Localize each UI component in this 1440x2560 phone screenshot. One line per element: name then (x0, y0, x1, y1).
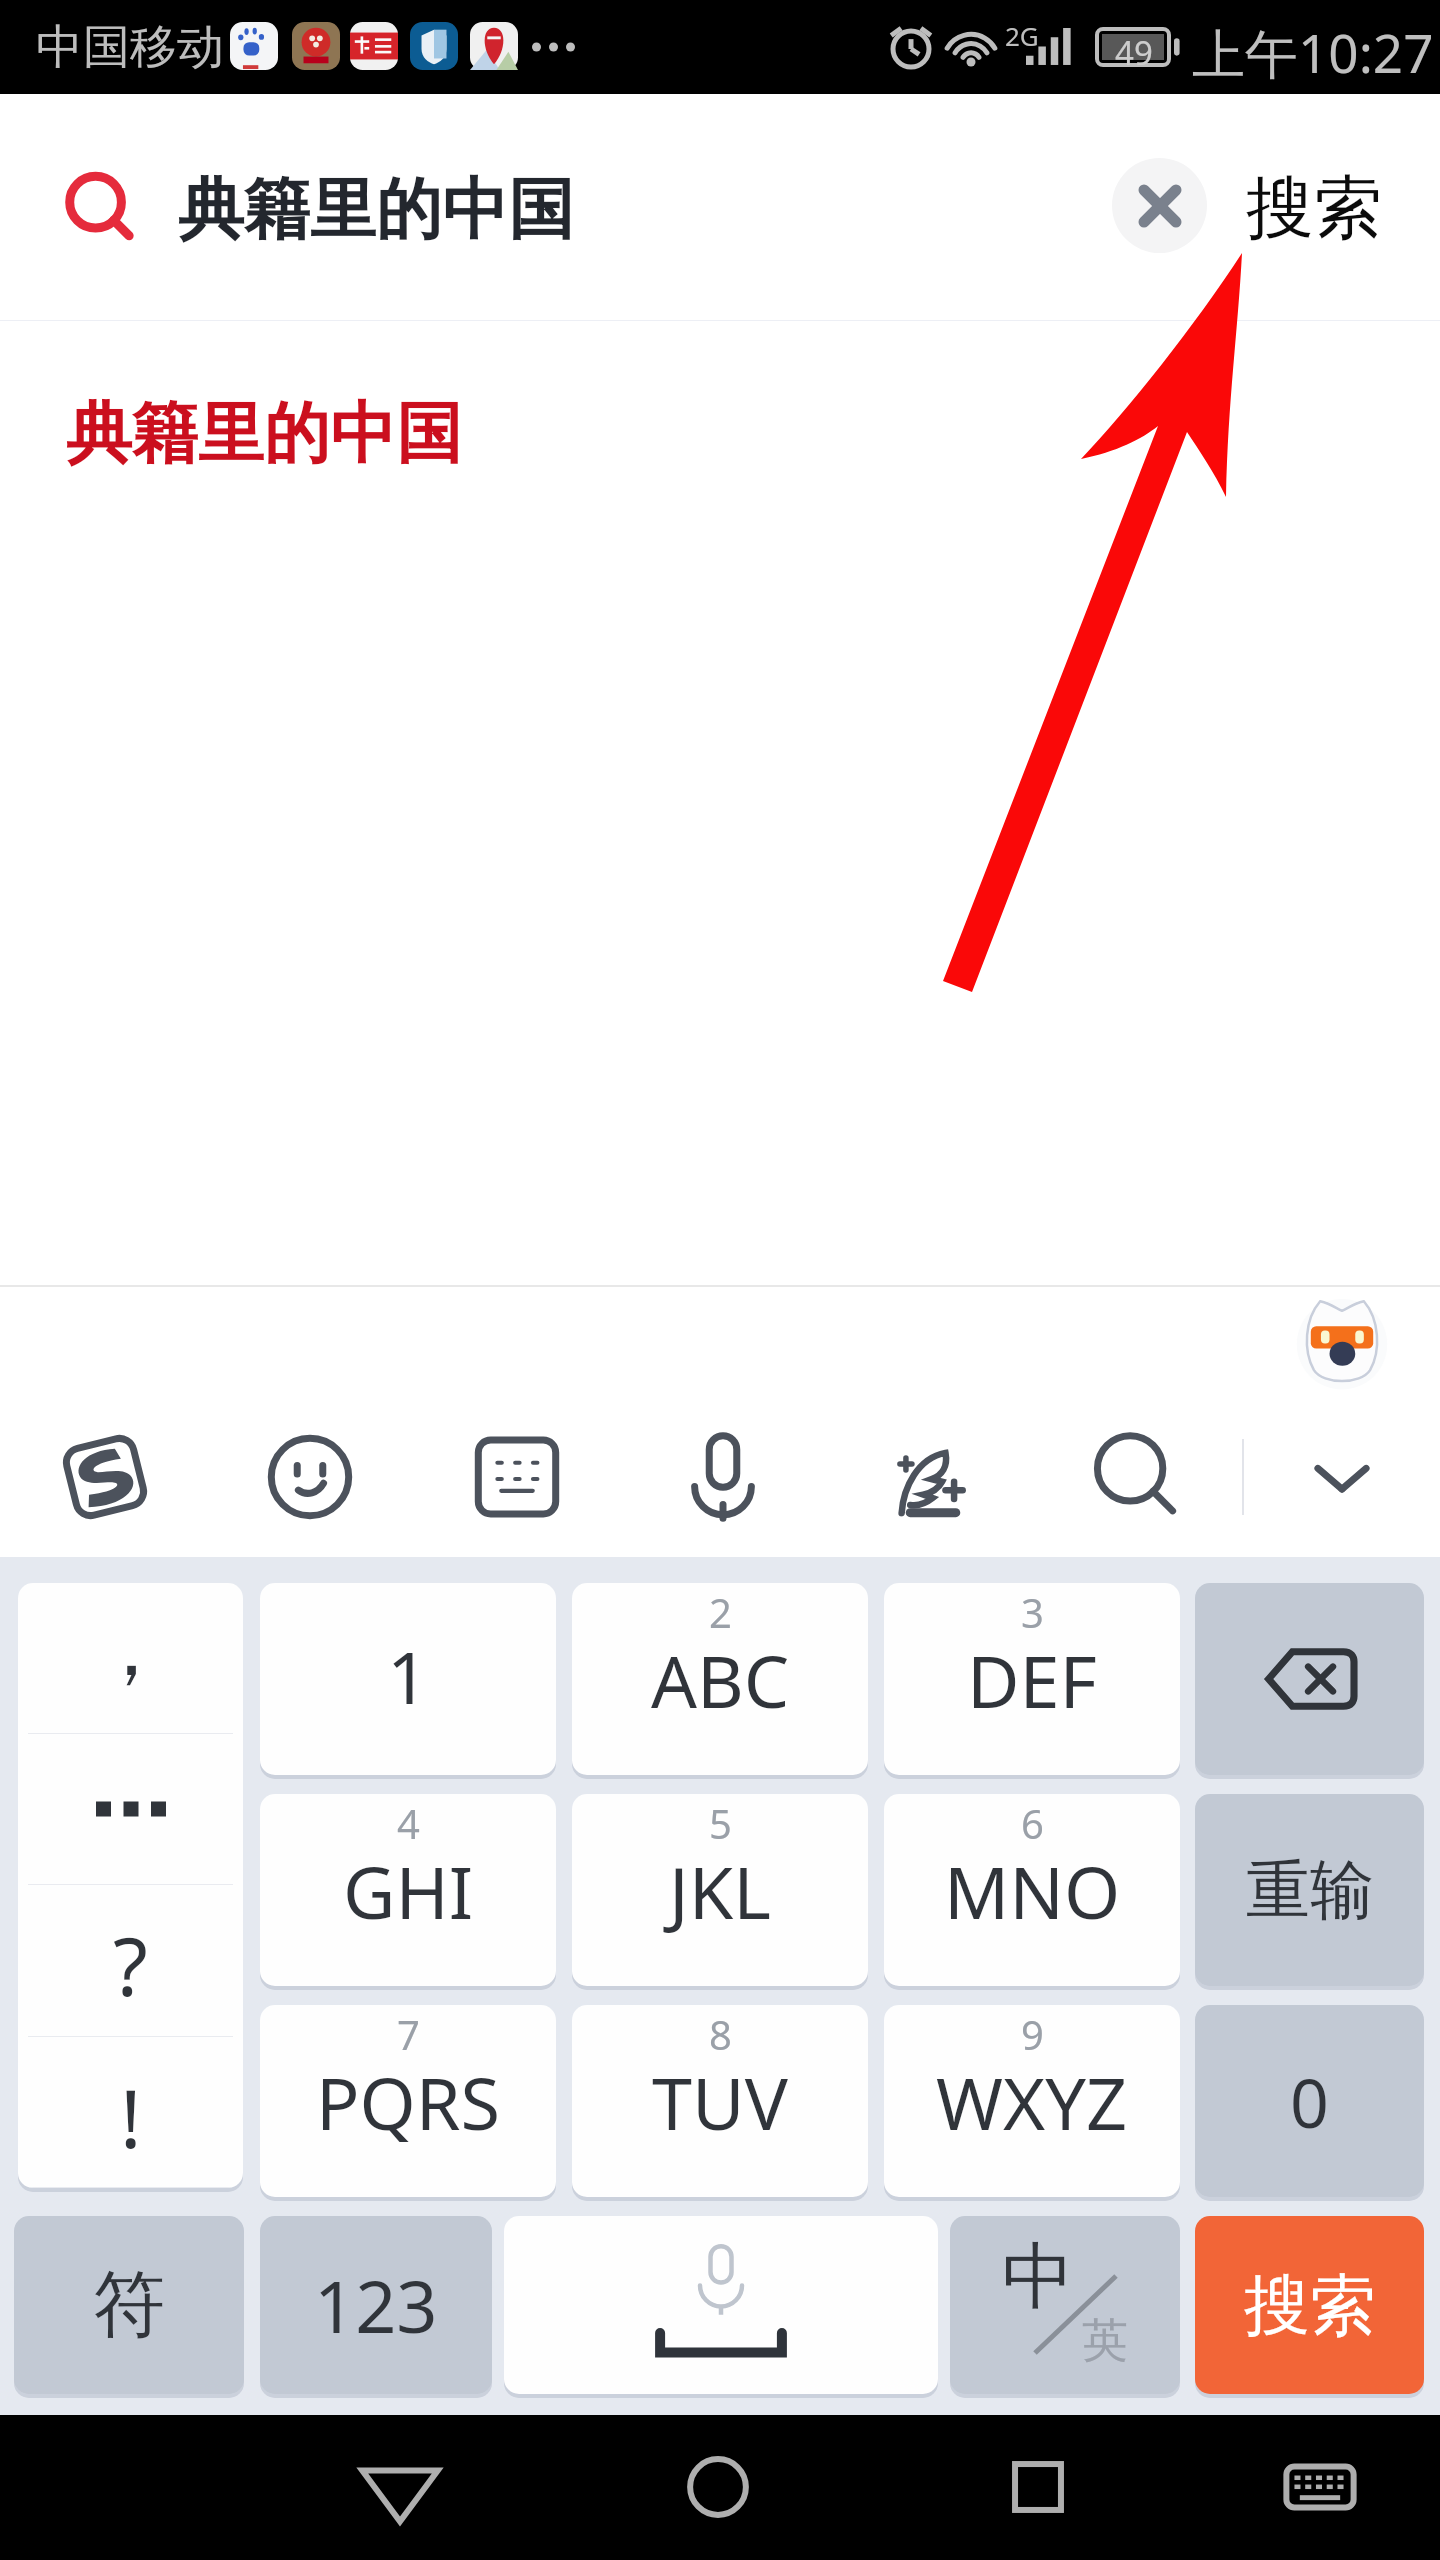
staticText: 重输 (1246, 1850, 1374, 1931)
button[interactable]: Hide keyboard (1250, 2417, 1390, 2557)
button[interactable]: Home (648, 2417, 788, 2557)
staticText: TUV (652, 2053, 788, 2151)
button[interactable]: 5 (572, 1794, 868, 1986)
staticText: 英 (1082, 2312, 1128, 2370)
button[interactable]: 4 (260, 1794, 556, 1986)
staticText: 2 (709, 1585, 732, 1639)
button[interactable]: Space (504, 2216, 938, 2394)
button[interactable]: 搜索 (1195, 2216, 1424, 2394)
button[interactable]: 2 (572, 1583, 868, 1775)
staticText: ， (91, 1598, 171, 1699)
button[interactable]: Assistant (1303, 1297, 1381, 1383)
staticText: DEF (967, 1631, 1097, 1729)
staticText: 7 (397, 2007, 420, 2061)
button[interactable]: Search (1079, 1419, 1195, 1535)
button[interactable]: 重输 (1195, 1794, 1424, 1986)
button[interactable]: 6 (884, 1794, 1180, 1986)
staticText: 上午10:27 (1192, 16, 1434, 88)
button[interactable]: Voice input (665, 1419, 781, 1535)
button[interactable]: Recents (968, 2417, 1108, 2557)
staticText: 5 (709, 1796, 732, 1850)
staticText: 3 (1021, 1585, 1044, 1639)
staticText: 1 (387, 1627, 429, 1725)
button[interactable]: Clear (1112, 158, 1207, 253)
staticText: WXYZ (936, 2053, 1128, 2151)
staticText: MNO (944, 1842, 1121, 1940)
staticText: 123 (314, 2256, 438, 2354)
staticText: ABC (651, 1631, 790, 1729)
staticText: 2G (1005, 18, 1039, 53)
button[interactable]: 123 (260, 2216, 492, 2394)
button[interactable]: Handwriting (872, 1419, 988, 1535)
staticText: 搜索 (1246, 166, 1382, 252)
staticText: 符 (93, 2260, 165, 2351)
staticText: 典籍里的中国 (66, 392, 462, 475)
button[interactable]: ! (18, 2037, 243, 2188)
button[interactable]: Sogou (47, 1419, 163, 1535)
button[interactable]: ， (18, 1583, 243, 2188)
staticText: JKL (669, 1842, 771, 1940)
staticText: 中国移动 (36, 18, 224, 77)
staticText: 0 (1290, 2055, 1329, 2148)
button[interactable]: 搜索 (1232, 156, 1396, 262)
staticText: 中 (1002, 2232, 1074, 2323)
button[interactable]: 典籍里的中国 (0, 321, 1440, 506)
button[interactable]: Back (330, 2417, 470, 2557)
staticText: 4 (397, 1796, 420, 1850)
button[interactable]: Chinese English toggle (950, 2216, 1180, 2394)
button[interactable]: 1 (260, 1583, 556, 1775)
button[interactable]: ? (18, 1885, 243, 2036)
staticText: PQRS (316, 2053, 501, 2151)
button[interactable]: 0 (1195, 2005, 1424, 2197)
button[interactable]: Keyboard (459, 1419, 575, 1535)
button[interactable]: 3 (884, 1583, 1180, 1775)
button[interactable]: Ellipsis (18, 1734, 243, 1884)
staticText: 49 (1115, 30, 1153, 66)
staticText: ? (113, 1910, 148, 2019)
staticText: GHI (343, 1842, 474, 1940)
staticText: 8 (709, 2007, 732, 2061)
button[interactable]: Emoji (252, 1419, 368, 1535)
staticText: 9 (1021, 2007, 1044, 2061)
button[interactable]: 9 (884, 2005, 1180, 2197)
staticText: ! (120, 2062, 142, 2171)
button[interactable]: 7 (260, 2005, 556, 2197)
button[interactable]: 符 (14, 2216, 244, 2394)
button[interactable]: ， (18, 1583, 243, 1733)
button[interactable]: Backspace (1195, 1583, 1424, 1775)
button[interactable]: 典籍里的中国 (178, 168, 574, 251)
staticText: 搜索 (1244, 2264, 1376, 2347)
button[interactable]: 8 (572, 2005, 868, 2197)
staticText: 6 (1021, 1796, 1044, 1850)
button[interactable]: Hide keyboard (1284, 1419, 1400, 1535)
